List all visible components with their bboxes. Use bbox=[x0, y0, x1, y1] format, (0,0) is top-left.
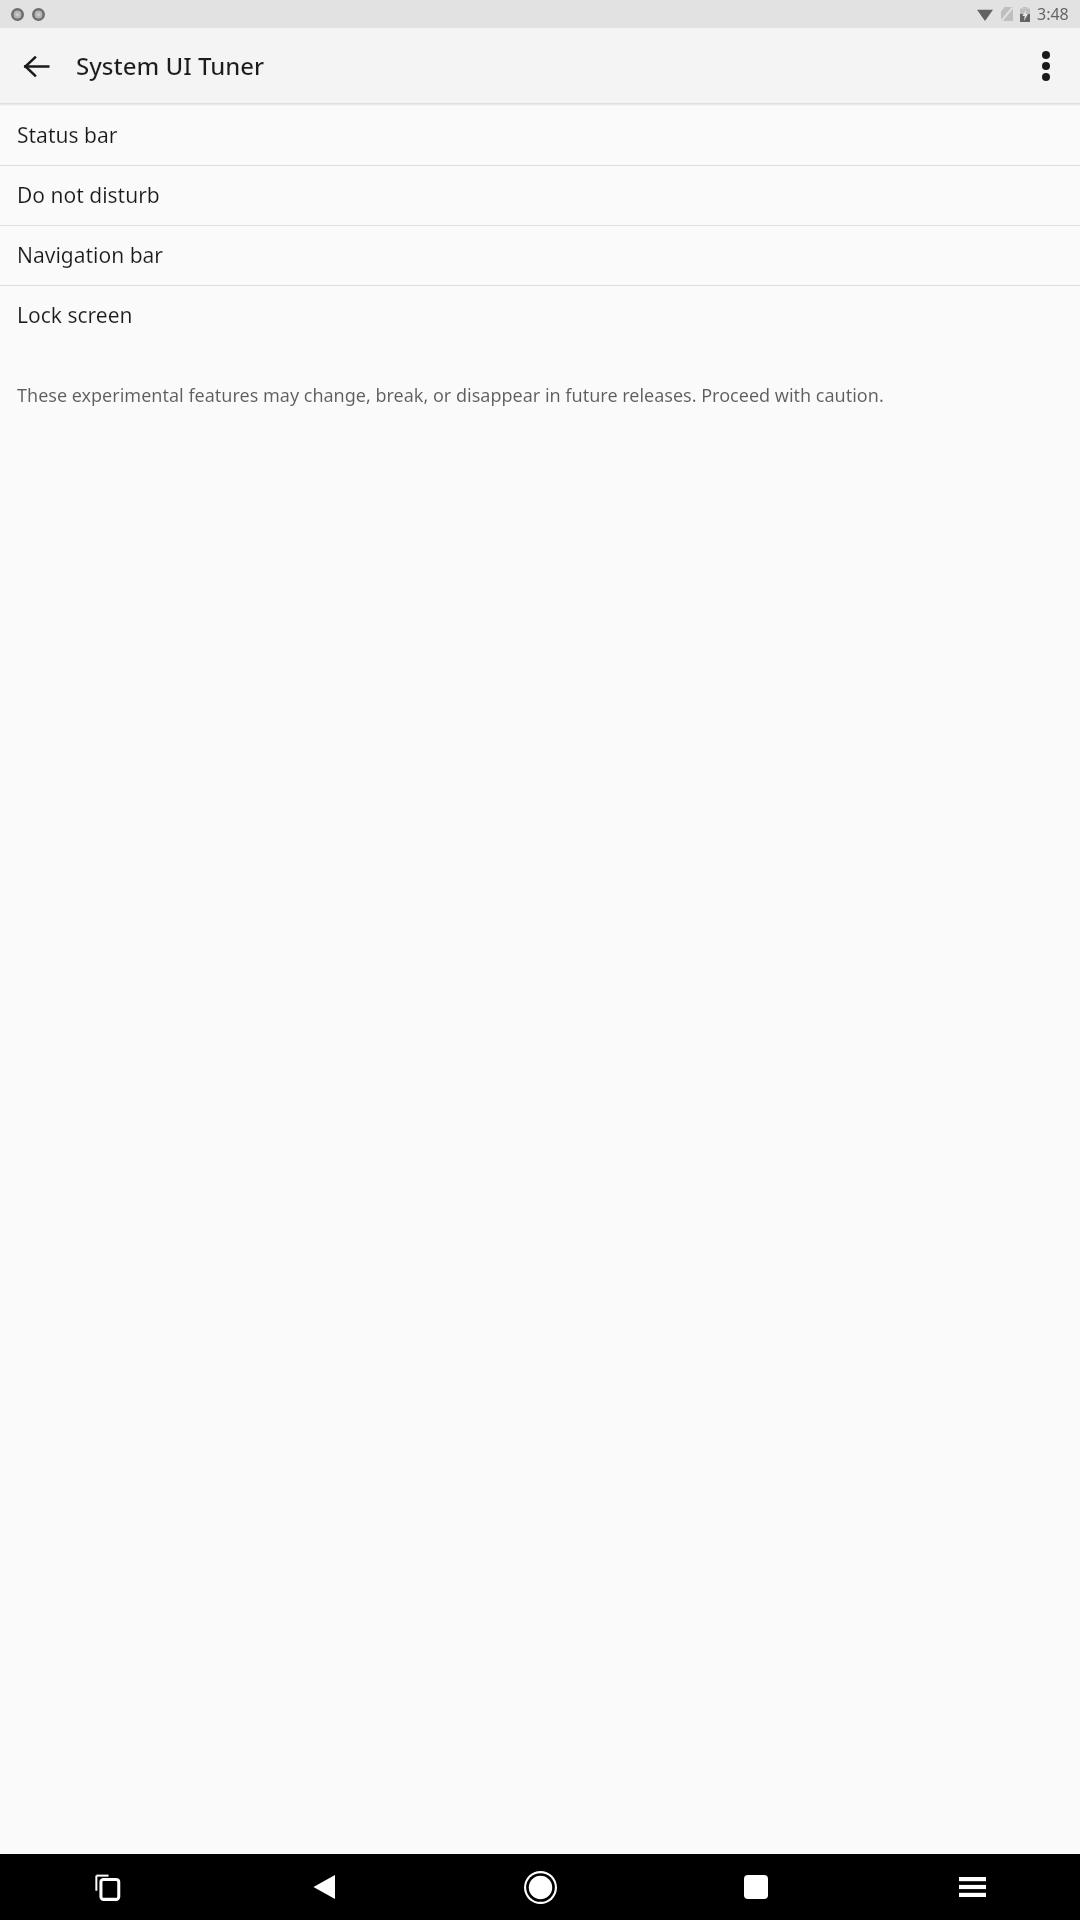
button[interactable]: Split screen bbox=[0, 1854, 216, 1920]
staticText: Lock screen bbox=[17, 301, 133, 330]
staticText: Status bar bbox=[17, 121, 118, 150]
button[interactable]: Navigation bar bbox=[0, 226, 1080, 285]
staticText: These experimental features may change, … bbox=[17, 383, 1000, 408]
button[interactable]: Recent apps bbox=[648, 1854, 864, 1920]
button[interactable]: Status bar bbox=[0, 106, 1080, 165]
staticText: Do not disturb bbox=[17, 181, 160, 210]
staticText: 3:48 bbox=[1037, 3, 1069, 25]
button[interactable]: Menu bbox=[864, 1854, 1080, 1920]
button[interactable]: More options bbox=[1018, 38, 1074, 94]
staticText: System UI Tuner bbox=[76, 49, 265, 82]
button[interactable]: Do not disturb bbox=[0, 166, 1080, 225]
button[interactable]: Home bbox=[432, 1854, 648, 1920]
button[interactable]: Back bbox=[216, 1854, 432, 1920]
button[interactable]: Lock screen bbox=[0, 286, 1080, 345]
button[interactable]: Navigate up bbox=[8, 38, 64, 94]
staticText: Navigation bar bbox=[17, 241, 164, 270]
